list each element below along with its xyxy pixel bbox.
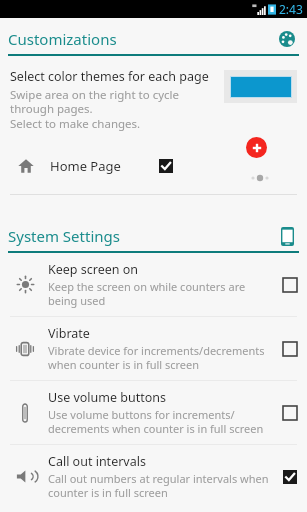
- button[interactable]: Vibrate: [0, 317, 307, 380]
- button[interactable]: Customizations: [275, 27, 299, 51]
- staticText: Customizations: [8, 29, 275, 49]
- button[interactable]: Keep screen on: [0, 253, 307, 316]
- button[interactable]: Use volume buttons: [0, 381, 307, 444]
- button[interactable]: System Settings: [275, 224, 299, 248]
- staticText: Keep the screen on while counters are be…: [48, 279, 277, 308]
- staticText: Call out intervals: [48, 453, 146, 470]
- staticText: Vibrate: [48, 325, 90, 342]
- staticText: 2:43: [279, 1, 303, 17]
- button[interactable]: Unchecked: [283, 406, 297, 420]
- button[interactable]: Unchecked: [283, 342, 297, 356]
- staticText: Keep screen on: [48, 261, 139, 278]
- button[interactable]: Add page: [246, 137, 267, 158]
- staticText: Swipe area on the right to cycle through…: [10, 87, 218, 116]
- staticText: Vibrate device for increments/decrements…: [48, 343, 277, 372]
- button[interactable]: Home Page: [10, 148, 297, 184]
- staticText: Select to make changes.: [10, 116, 141, 132]
- button[interactable]: Unchecked: [283, 278, 297, 292]
- button[interactable]: Call out intervals: [0, 445, 307, 508]
- button[interactable]: Checked: [283, 470, 297, 484]
- button[interactable]: [224, 70, 297, 103]
- button[interactable]: Checked: [159, 159, 173, 173]
- staticText: Select color themes for each page: [10, 68, 209, 85]
- staticText: Home Page: [50, 157, 121, 175]
- staticText: System Settings: [8, 226, 275, 246]
- staticText: Use volume buttons: [48, 389, 166, 406]
- staticText: Call out numbers at regular intervals wh…: [48, 471, 277, 500]
- staticText: Use volume buttons for increments/decrem…: [48, 407, 277, 436]
